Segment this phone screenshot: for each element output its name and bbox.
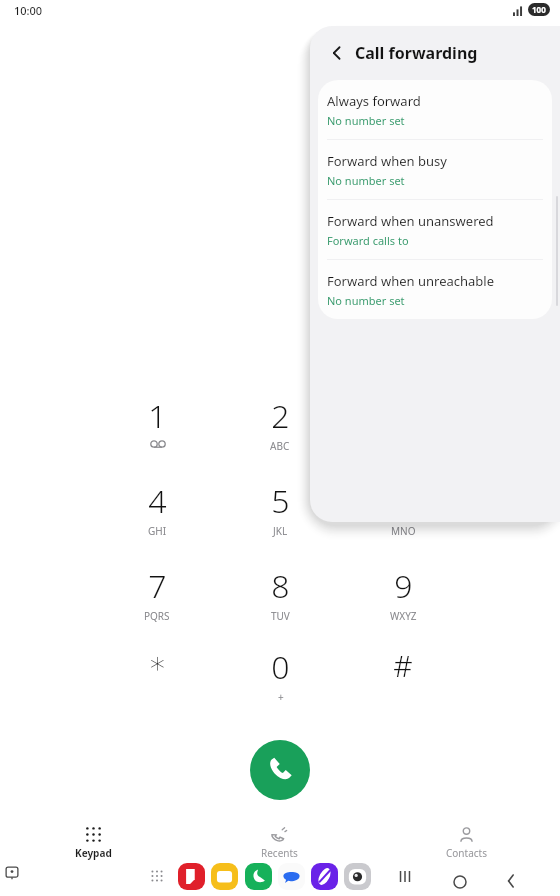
button[interactable]: 0 xyxy=(236,645,324,707)
button[interactable]: Home xyxy=(448,870,472,894)
staticText: 10:00 xyxy=(14,3,43,18)
button[interactable]: 4 xyxy=(113,479,201,541)
staticText: Call forwarding xyxy=(355,42,478,64)
staticText: PQRS xyxy=(144,609,170,623)
staticText: WXYZ xyxy=(390,609,417,623)
staticText: Forward when unanswered xyxy=(327,212,494,230)
staticText: No number set xyxy=(327,293,405,308)
button[interactable]: 6 xyxy=(359,479,447,541)
button[interactable]: # xyxy=(359,645,447,707)
staticText: ∗ xyxy=(148,645,167,680)
staticText: MNO xyxy=(391,524,416,538)
staticText: 2 xyxy=(271,394,290,438)
staticText: 4 xyxy=(148,479,167,523)
button[interactable]: App xyxy=(211,863,238,890)
button[interactable]: 8 xyxy=(236,564,324,626)
button[interactable]: Forward when busy xyxy=(318,140,552,199)
button[interactable]: 7 xyxy=(113,564,201,626)
staticText: # xyxy=(393,645,413,686)
button[interactable]: Forward when unreachable xyxy=(318,260,552,319)
button[interactable]: Back xyxy=(500,870,522,892)
staticText: No number set xyxy=(327,113,405,128)
button[interactable]: ∗ xyxy=(113,645,201,707)
button[interactable]: 2 xyxy=(236,394,324,456)
staticText: 5 xyxy=(271,479,290,523)
staticText: Recents xyxy=(261,846,298,860)
button[interactable]: Recents xyxy=(186,821,373,860)
staticText: 0 xyxy=(271,645,290,689)
staticText: GHI xyxy=(148,524,167,538)
button[interactable]: 1 xyxy=(113,394,201,456)
button[interactable]: Call xyxy=(250,740,310,800)
button[interactable]: App xyxy=(344,863,371,890)
staticText: + xyxy=(278,690,284,704)
button[interactable]: App xyxy=(278,863,305,890)
button[interactable]: Keypad xyxy=(0,821,186,860)
staticText: 1 xyxy=(148,394,167,438)
staticText: 7 xyxy=(148,564,167,608)
button[interactable]: Back xyxy=(324,40,350,66)
staticText: Forward calls to xyxy=(327,233,409,248)
staticText: 8 xyxy=(271,564,290,608)
staticText: 6 xyxy=(394,479,413,523)
staticText: Keypad xyxy=(75,846,112,860)
button[interactable]: App xyxy=(178,863,205,890)
button[interactable]: Always forward xyxy=(318,80,552,139)
button[interactable]: Forward when unanswered xyxy=(318,200,552,259)
staticText: ABC xyxy=(270,439,290,453)
staticText: TUV xyxy=(271,609,290,623)
staticText: No number set xyxy=(327,173,405,188)
staticText: Always forward xyxy=(327,92,421,110)
staticText: 9 xyxy=(394,564,413,608)
staticText: Forward when unreachable xyxy=(327,272,495,290)
button[interactable]: Contacts xyxy=(373,821,560,860)
button[interactable]: App xyxy=(311,863,338,890)
staticText: 100 xyxy=(532,4,546,15)
button[interactable]: 5 xyxy=(236,479,324,541)
staticText: Forward when busy xyxy=(327,152,447,170)
staticText: Contacts xyxy=(446,846,487,860)
button[interactable]: App xyxy=(245,863,272,890)
staticText: JKL xyxy=(273,524,288,538)
button[interactable]: 9 xyxy=(359,564,447,626)
